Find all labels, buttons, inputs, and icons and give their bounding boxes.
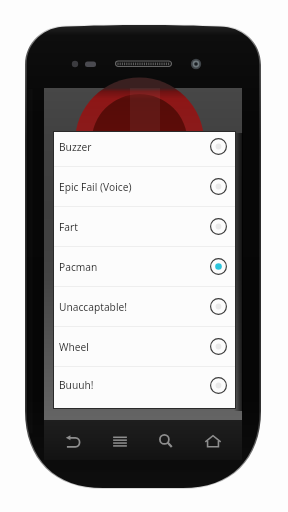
button[interactable]: Buzzer <box>54 132 235 166</box>
button[interactable]: Home <box>190 422 236 460</box>
staticText: Epic Fail (Voice) <box>59 180 210 194</box>
button[interactable]: Menu <box>97 422 143 460</box>
staticText: Buzzer <box>59 140 210 154</box>
staticText: Unaccaptable! <box>59 300 210 314</box>
button[interactable]: Fart <box>54 207 235 246</box>
staticText: Buuuh! <box>59 378 210 392</box>
button[interactable]: Unaccaptable! <box>54 287 235 326</box>
button[interactable]: Back <box>50 422 96 460</box>
button[interactable]: Buuuh! <box>54 367 235 403</box>
button[interactable]: Epic Fail (Voice) <box>54 167 235 206</box>
button[interactable]: Search <box>143 422 189 460</box>
staticText: Pacman <box>59 260 210 274</box>
button[interactable]: Pacman <box>54 247 235 286</box>
staticText: Fart <box>59 220 210 234</box>
staticText: Wheel <box>59 340 210 354</box>
button[interactable]: Wheel <box>54 327 235 366</box>
